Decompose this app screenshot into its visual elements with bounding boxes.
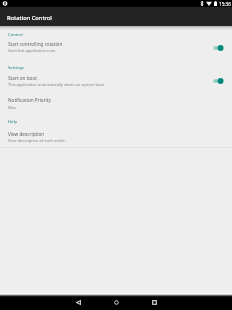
staticText: Start controlling rotation [8, 41, 63, 47]
button[interactable]: View description [0, 128, 232, 144]
staticText: Settings [8, 65, 25, 71]
button[interactable]: Toggle [212, 76, 226, 86]
staticText: Rotation Control [7, 14, 52, 22]
button[interactable]: Recents [135, 294, 173, 310]
button[interactable]: Start controlling rotation [0, 38, 232, 54]
staticText: Control [8, 32, 23, 38]
staticText: This application automatically starts on… [8, 82, 106, 87]
staticText: Start on boot [8, 75, 37, 81]
button[interactable]: Toggle [212, 43, 226, 53]
button[interactable]: Notification Priority [0, 94, 232, 110]
staticText: Max [8, 105, 16, 110]
button[interactable]: Home [97, 294, 135, 310]
button[interactable]: Start on boot [0, 72, 232, 88]
staticText: Notification Priority [8, 97, 51, 103]
staticText: View description of each mode. [8, 138, 66, 143]
staticText: 15:36 [219, 1, 231, 7]
staticText: View description [8, 131, 45, 137]
button[interactable]: Back [59, 294, 97, 310]
staticText: Start this application now. [8, 48, 56, 53]
staticText: Help [8, 119, 18, 125]
